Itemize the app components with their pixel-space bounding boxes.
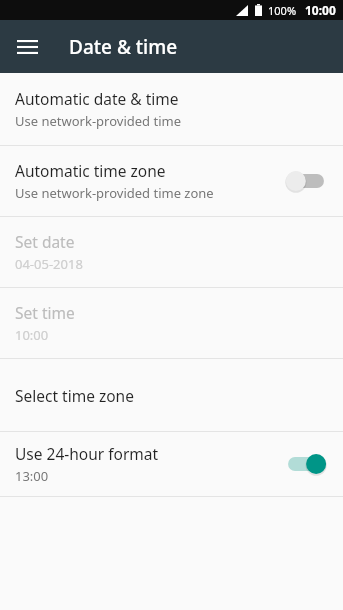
staticText: Set date <box>15 231 75 252</box>
staticText: 13:00 <box>15 467 49 485</box>
button[interactable]: Automatic date & time <box>0 73 343 145</box>
button[interactable]: Set date <box>0 217 343 287</box>
staticText: Automatic time zone <box>15 160 166 181</box>
staticText: Set time <box>15 302 75 323</box>
button[interactable]: Set time <box>0 288 343 358</box>
staticText: 10:00 <box>15 326 49 344</box>
button[interactable]: Open navigation menu <box>10 30 44 64</box>
staticText: 04-05-2018 <box>15 255 83 273</box>
staticText: Date & time <box>69 34 178 60</box>
staticText: 100% <box>268 3 297 18</box>
staticText: Automatic date & time <box>15 88 179 109</box>
button[interactable]: Select time zone <box>0 359 343 431</box>
button[interactable]: Toggle off <box>283 168 329 194</box>
button[interactable]: Toggle on <box>283 451 329 477</box>
staticText: 10:00 <box>305 2 336 18</box>
staticText: Use 24-hour format <box>15 443 159 464</box>
button[interactable]: Automatic time zone <box>0 146 343 216</box>
button[interactable]: Use 24-hour format <box>0 432 343 496</box>
staticText: Use network-provided time zone <box>15 184 214 202</box>
staticText: Use network-provided time <box>15 112 181 130</box>
staticText: Select time zone <box>15 385 134 406</box>
